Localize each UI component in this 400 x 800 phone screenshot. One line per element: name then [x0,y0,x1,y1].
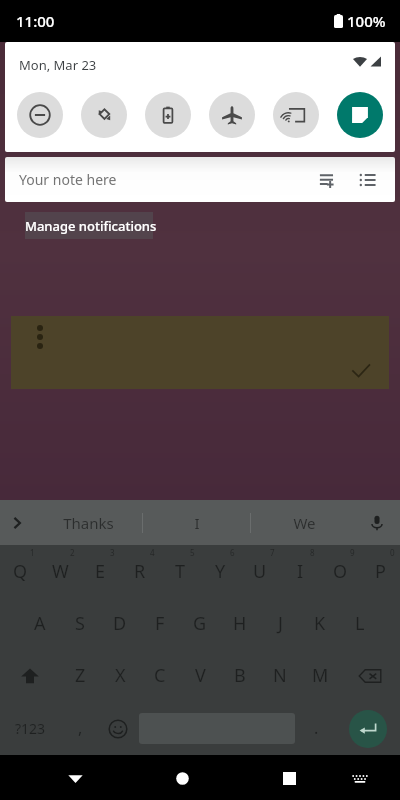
staticText: 1 [30,547,35,558]
button[interactable]: Switch keyboard [340,758,380,798]
button[interactable]: Add list item [315,167,341,193]
button[interactable]: V [180,649,220,702]
button[interactable]: G [180,597,220,649]
staticText: 11:00 [16,11,55,31]
button[interactable]: B [220,649,260,702]
button[interactable]: Back [55,758,95,798]
button[interactable]: Checklist [355,167,381,193]
button[interactable]: D [100,597,140,649]
staticText: 6 [230,547,235,558]
staticText: G [193,611,207,636]
button[interactable]: We [251,500,358,545]
staticText: S [75,611,85,636]
staticText: B [234,663,246,688]
staticText: I [194,513,200,533]
button[interactable]: Enter [349,710,387,748]
staticText: . [314,717,319,739]
staticText: 9 [350,547,355,558]
button[interactable]: T [160,545,200,597]
button[interactable]: Expand toolbar [0,506,34,540]
button[interactable]: S [60,597,100,649]
button[interactable]: M [300,649,340,702]
button[interactable]: A [20,597,60,649]
staticText: 5 [190,547,195,558]
staticText: A [34,611,46,636]
button[interactable]: F [140,597,180,649]
staticText: N [273,663,287,688]
staticText: Thanks [63,513,114,533]
staticText: F [155,611,165,636]
staticText: R [134,559,146,584]
button[interactable]: Manage notifications [25,217,157,235]
button[interactable]: P [360,545,400,597]
button[interactable]: Cast screen [273,92,319,138]
staticText: 8 [310,547,315,558]
staticText: Z [75,663,86,688]
staticText: H [233,611,247,636]
staticText: V [195,663,206,688]
staticText: T [175,559,186,584]
staticText: Your note here [19,170,117,189]
button[interactable]: Home [162,758,202,798]
button[interactable]: Z [60,649,100,702]
staticText: Q [13,559,28,584]
staticText: 3 [110,547,115,558]
button[interactable]: Thanks [34,500,142,545]
staticText: I [297,559,304,584]
button[interactable]: More options [31,322,49,352]
button[interactable]: O [320,545,360,597]
staticText: O [333,559,348,584]
button[interactable]: ?123 [0,702,61,755]
staticText: , [78,717,83,739]
staticText: P [375,559,386,584]
button[interactable]: Q [0,545,40,597]
button[interactable]: Auto rotate [81,92,127,138]
button[interactable]: Airplane mode [209,92,255,138]
button[interactable]: X [100,649,140,702]
button[interactable]: Y [200,545,240,597]
staticText: 2 [70,547,75,558]
button[interactable]: Done [348,358,374,384]
button[interactable]: Battery saver [145,92,191,138]
button[interactable]: Voice input [362,508,392,538]
staticText: 100% [347,11,386,31]
button[interactable]: Your note here [5,157,395,202]
button[interactable]: Notes [337,92,383,138]
button[interactable]: K [300,597,340,649]
staticText: 0 [390,547,395,558]
button[interactable]: Emoji [99,702,137,755]
staticText: M [312,663,329,688]
staticText: Mon, Mar 23 [19,56,97,74]
staticText: W [52,559,69,584]
button[interactable]: N [260,649,300,702]
button[interactable]: R [120,545,160,597]
staticText: C [154,663,166,688]
staticText: U [253,559,267,584]
button[interactable]: W [40,545,80,597]
staticText: L [355,611,365,636]
button[interactable]: Do not disturb [17,92,63,138]
button[interactable]: Recents [269,758,309,798]
staticText: ?123 [15,719,46,738]
staticText: E [95,559,106,584]
button[interactable]: E [80,545,120,597]
button[interactable]: U [240,545,280,597]
button[interactable]: Shift [0,649,60,702]
button[interactable]: Backspace [340,649,400,702]
staticText: K [314,611,326,636]
staticText: Y [215,559,226,584]
staticText: We [293,513,316,533]
staticText: 4 [150,547,155,558]
staticText: J [278,611,283,636]
button[interactable]: H [220,597,260,649]
staticText: 7 [270,547,275,558]
